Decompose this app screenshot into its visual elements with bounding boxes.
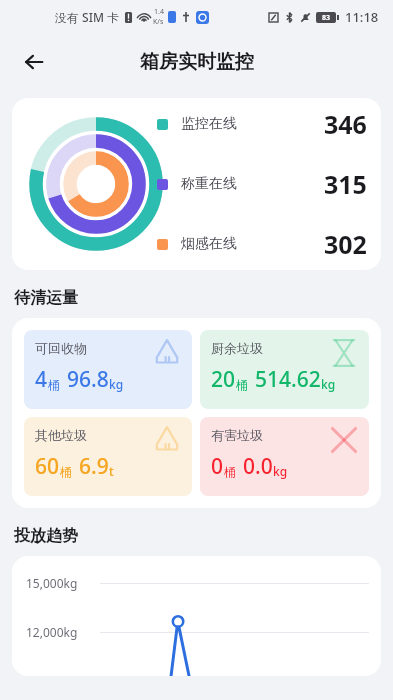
- staticText: 83: [322, 13, 331, 23]
- staticText: 桶: [236, 377, 248, 392]
- button[interactable]: 有害垃圾: [200, 417, 369, 496]
- button[interactable]: 其他垃圾: [24, 417, 192, 496]
- staticText: 厨余垃圾: [211, 340, 263, 356]
- button[interactable]: 烟感在线: [157, 227, 367, 261]
- staticText: 60: [35, 452, 60, 481]
- button[interactable]: 厨余垃圾: [200, 330, 369, 409]
- staticText: 烟感在线: [181, 235, 237, 253]
- staticText: 其他垃圾: [35, 427, 87, 443]
- staticText: 箱房实时监控: [140, 50, 254, 74]
- staticText: kg: [273, 463, 288, 479]
- staticText: 桶: [48, 377, 60, 392]
- staticText: kg: [109, 376, 124, 392]
- staticText: t: [109, 463, 114, 479]
- staticText: 没有 SIM 卡: [55, 9, 120, 25]
- staticText: kg: [321, 376, 336, 392]
- button[interactable]: 称重在线: [157, 167, 367, 201]
- button[interactable]: 监控在线: [12, 98, 381, 270]
- staticText: 346: [324, 107, 367, 141]
- staticText: 0.0: [243, 452, 273, 481]
- staticText: 514.62: [255, 365, 321, 394]
- staticText: K/s: [153, 17, 164, 27]
- staticText: 4: [35, 365, 48, 394]
- staticText: 0: [211, 452, 224, 481]
- staticText: 15,000kg: [26, 575, 100, 591]
- button[interactable]: 监控在线: [157, 107, 367, 141]
- staticText: 可回收物: [35, 340, 87, 356]
- staticText: 6.9: [79, 452, 109, 481]
- staticText: 称重在线: [181, 175, 237, 193]
- staticText: 投放趋势: [14, 526, 78, 546]
- staticText: 1.4: [154, 7, 164, 17]
- staticText: 监控在线: [181, 115, 237, 133]
- staticText: 桶: [224, 464, 236, 479]
- staticText: 12,000kg: [26, 624, 100, 640]
- staticText: 待清运量: [14, 288, 78, 308]
- staticText: 桶: [60, 464, 72, 479]
- button[interactable]: Back: [14, 42, 54, 82]
- staticText: 20: [211, 365, 236, 394]
- staticText: 96.8: [67, 365, 109, 394]
- button[interactable]: 可回收物: [24, 330, 192, 409]
- staticText: 有害垃圾: [211, 427, 263, 443]
- staticText: 302: [324, 227, 367, 261]
- staticText: 315: [324, 167, 367, 201]
- staticText: 11:18: [345, 8, 379, 26]
